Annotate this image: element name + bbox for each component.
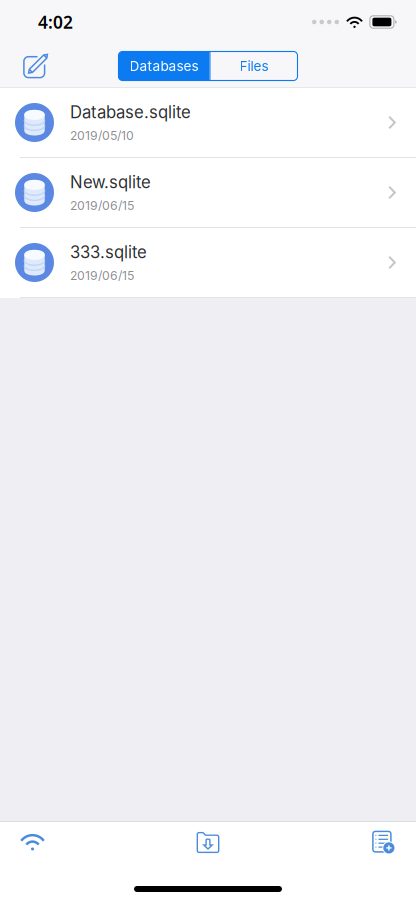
button[interactable]: New database — [351, 822, 416, 863]
button[interactable]: Databases — [118, 51, 209, 80]
button[interactable]: Compose — [12, 44, 59, 87]
button[interactable]: New.sqlite — [0, 158, 416, 228]
staticText: Files — [239, 58, 268, 74]
staticText: 4:02 — [38, 10, 73, 33]
staticText: New.sqlite — [70, 172, 151, 192]
staticText: Databases — [129, 58, 198, 74]
staticText: 2019/06/15 — [70, 198, 134, 213]
staticText: 2019/06/15 — [70, 268, 134, 283]
staticText: 2019/05/10 — [70, 128, 134, 143]
button[interactable]: Import file — [175, 822, 240, 863]
staticText: Database.sqlite — [70, 102, 191, 122]
button[interactable]: Files — [210, 51, 297, 80]
staticText: 333.sqlite — [70, 242, 147, 262]
button[interactable]: Database.sqlite — [0, 88, 416, 158]
button[interactable]: 333.sqlite — [0, 228, 416, 298]
button[interactable]: Server — [0, 822, 65, 863]
